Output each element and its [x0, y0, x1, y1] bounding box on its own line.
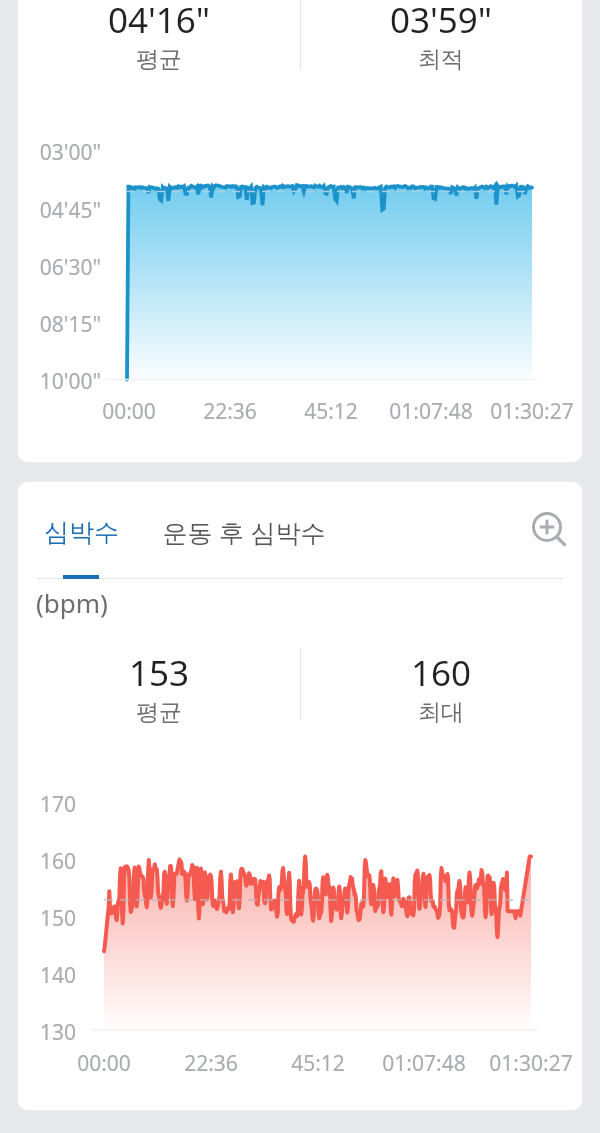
staticText: 160 [18, 847, 76, 876]
staticText: 140 [18, 961, 76, 990]
staticText: 150 [18, 904, 76, 933]
staticText: 평균 [18, 698, 300, 727]
button[interactable]: Zoom in [524, 505, 572, 553]
staticText: 130 [18, 1018, 76, 1047]
staticText: 45:12 [271, 397, 391, 426]
staticText: 01:30:27 [472, 397, 582, 426]
staticText: 03'59" [300, 0, 582, 44]
staticText: 153 [18, 649, 300, 697]
button[interactable]: 운동 후 심박수 [152, 505, 336, 559]
staticText: 01:07:48 [371, 397, 491, 426]
staticText: 00:00 [69, 397, 189, 426]
staticText: 03'00" [21, 138, 101, 167]
staticText: 160 [300, 649, 582, 697]
staticText: 심박수 [44, 517, 119, 548]
staticText: 10'00" [21, 367, 101, 396]
staticText: 08'15" [21, 310, 101, 339]
staticText: 최적 [300, 45, 582, 74]
staticText: 평균 [18, 45, 300, 74]
staticText: 170 [18, 790, 76, 819]
staticText: (bpm) [36, 585, 108, 620]
staticText: 06'30" [21, 253, 101, 282]
staticText: 22:36 [170, 397, 290, 426]
staticText: 04'16" [18, 0, 300, 44]
staticText: 00:00 [44, 1049, 164, 1078]
staticText: 최대 [300, 698, 582, 727]
staticText: 45:12 [258, 1049, 378, 1078]
staticText: 운동 후 심박수 [162, 515, 326, 549]
button[interactable]: 심박수 [34, 505, 128, 559]
staticText: 01:07:48 [364, 1049, 484, 1078]
staticText: 04'45" [21, 196, 101, 225]
staticText: 22:36 [151, 1049, 271, 1078]
staticText: 01:30:27 [471, 1049, 582, 1078]
